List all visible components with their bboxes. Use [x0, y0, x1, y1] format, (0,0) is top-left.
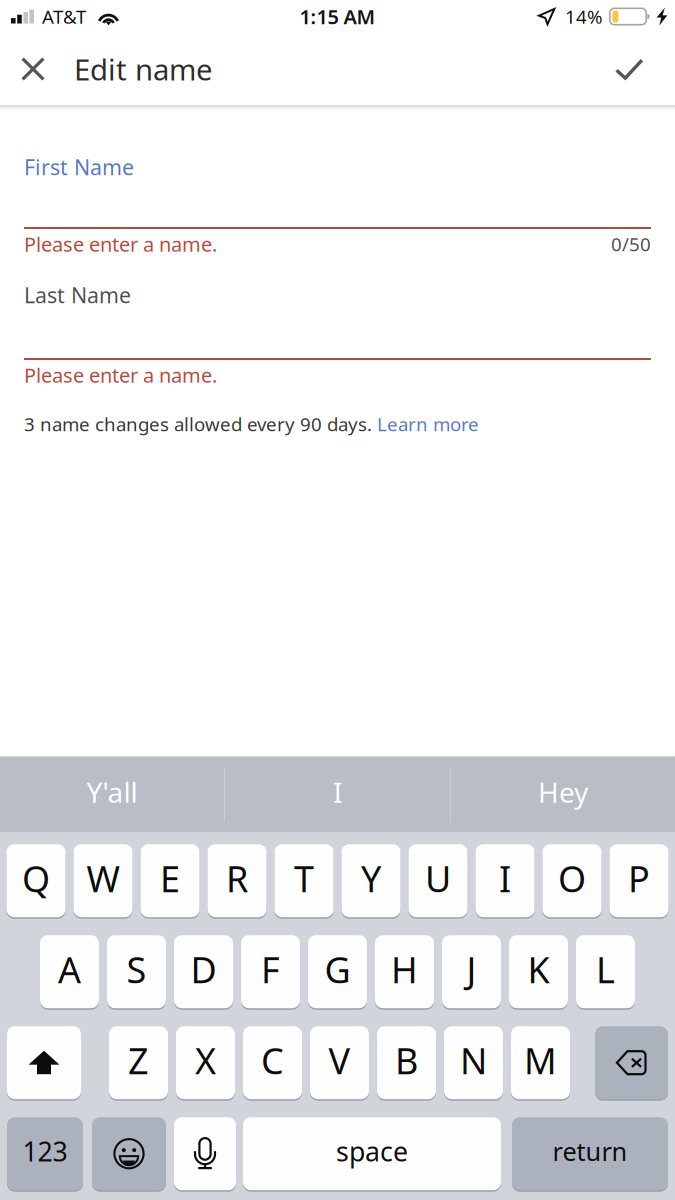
- button[interactable]: L: [576, 935, 635, 1010]
- button[interactable]: X: [176, 1026, 235, 1101]
- staticText: V: [328, 1036, 350, 1084]
- button[interactable]: T: [274, 844, 333, 919]
- staticText: F: [261, 945, 280, 993]
- button[interactable]: M: [511, 1026, 570, 1101]
- staticText: P: [628, 854, 650, 902]
- button[interactable]: E: [140, 844, 199, 919]
- staticText: Y'all: [86, 773, 137, 811]
- button[interactable]: H: [375, 935, 434, 1010]
- staticText: return: [552, 1134, 627, 1168]
- button[interactable]: I: [475, 844, 534, 919]
- staticText: 1:15 AM: [299, 3, 375, 30]
- staticText: Please enter a name.: [24, 231, 217, 257]
- staticText: U: [425, 854, 451, 902]
- staticText: L: [596, 945, 615, 993]
- staticText: C: [261, 1036, 284, 1084]
- button[interactable]: N: [444, 1026, 503, 1101]
- staticText: Edit name: [74, 49, 213, 88]
- button[interactable]: O: [542, 844, 601, 919]
- button[interactable]: P: [609, 844, 668, 919]
- button[interactable]: Save: [599, 33, 659, 105]
- staticText: Please enter a name.: [24, 362, 217, 388]
- staticText: N: [460, 1036, 487, 1084]
- button[interactable]: R: [207, 844, 266, 919]
- button[interactable]: K: [509, 935, 568, 1010]
- staticText: 14%: [565, 4, 603, 29]
- button[interactable]: return: [512, 1117, 668, 1192]
- button[interactable]: Emoji: [92, 1117, 166, 1192]
- staticText: First Name: [24, 153, 134, 181]
- staticText: A: [58, 945, 81, 993]
- button[interactable]: W: [73, 844, 132, 919]
- staticText: X: [195, 1036, 216, 1084]
- button[interactable]: G: [308, 935, 367, 1010]
- staticText: I: [499, 854, 511, 902]
- staticText: W: [86, 854, 119, 902]
- button[interactable]: C: [243, 1026, 302, 1101]
- staticText: I: [333, 773, 342, 811]
- staticText: 3 name changes allowed every 90 days.: [24, 412, 377, 436]
- button[interactable]: 123: [7, 1117, 83, 1192]
- button[interactable]: F: [241, 935, 300, 1010]
- staticText: E: [160, 854, 180, 902]
- staticText: M: [524, 1036, 557, 1084]
- button[interactable]: J: [442, 935, 501, 1010]
- staticText: D: [190, 945, 216, 993]
- staticText: B: [395, 1036, 418, 1084]
- staticText: K: [527, 945, 549, 993]
- staticText: AT&T: [42, 4, 86, 29]
- staticText: J: [466, 945, 476, 993]
- button[interactable]: Dictation: [174, 1117, 236, 1192]
- button[interactable]: I: [225, 757, 450, 832]
- staticText: space: [336, 1133, 408, 1169]
- button[interactable]: Close: [0, 33, 66, 105]
- button[interactable]: A: [40, 935, 99, 1010]
- staticText: Learn more: [377, 412, 479, 436]
- staticText: O: [558, 854, 586, 902]
- button[interactable]: U: [408, 844, 467, 919]
- staticText: Q: [22, 854, 50, 902]
- staticText: S: [126, 945, 146, 993]
- button[interactable]: V: [310, 1026, 369, 1101]
- button[interactable]: Shift: [7, 1026, 81, 1101]
- button[interactable]: Learn more: [377, 412, 479, 436]
- staticText: R: [226, 854, 248, 902]
- staticText: Y: [361, 854, 381, 902]
- staticText: 123: [22, 1133, 67, 1169]
- button[interactable]: Hey: [451, 757, 675, 832]
- button[interactable]: Delete: [595, 1026, 668, 1101]
- button[interactable]: D: [174, 935, 233, 1010]
- staticText: Z: [128, 1036, 149, 1084]
- button[interactable]: space: [243, 1117, 501, 1192]
- staticText: Last Name: [24, 281, 131, 309]
- button[interactable]: S: [107, 935, 166, 1010]
- staticText: H: [391, 945, 418, 993]
- staticText: 0/50: [611, 232, 651, 256]
- button[interactable]: B: [377, 1026, 436, 1101]
- button[interactable]: Y'all: [0, 757, 224, 832]
- button[interactable]: Q: [6, 844, 65, 919]
- staticText: G: [324, 945, 350, 993]
- staticText: Hey: [538, 773, 588, 811]
- button[interactable]: Z: [109, 1026, 168, 1101]
- staticText: T: [294, 854, 314, 902]
- button[interactable]: Y: [341, 844, 400, 919]
